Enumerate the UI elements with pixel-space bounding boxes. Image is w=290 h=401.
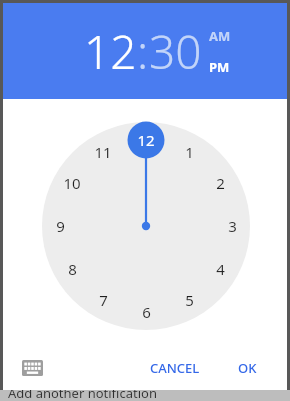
button[interactable]: 30	[149, 20, 202, 83]
staticText: :	[137, 20, 149, 83]
staticText: 30	[149, 20, 202, 83]
staticText: 2	[216, 173, 225, 193]
button[interactable]: 6	[131, 297, 161, 327]
button[interactable]: 11	[88, 137, 118, 167]
button[interactable]: 12	[131, 125, 161, 155]
button[interactable]: 10	[57, 168, 87, 198]
button[interactable]: CANCEL	[142, 352, 208, 384]
staticText: PM	[209, 58, 230, 76]
button[interactable]: 3	[217, 211, 247, 241]
staticText: 9	[56, 216, 65, 236]
button[interactable]: 2	[205, 168, 235, 198]
button[interactable]: AM	[209, 25, 231, 47]
button[interactable]: Switch to keyboard input	[15, 351, 49, 385]
button[interactable]: PM	[209, 56, 230, 78]
button[interactable]: 9	[45, 211, 75, 241]
staticText: 12	[84, 20, 137, 83]
staticText: OK	[238, 359, 257, 377]
button[interactable]: 12	[84, 20, 137, 83]
staticText: Add another notification	[8, 384, 157, 398]
staticText: 12	[137, 130, 155, 150]
button[interactable]: 4	[205, 254, 235, 284]
staticText: AM	[209, 27, 231, 45]
staticText: 5	[185, 290, 194, 310]
staticText: 11	[94, 142, 112, 162]
staticText: 10	[63, 173, 81, 193]
staticText: 8	[68, 259, 77, 279]
staticText: CANCEL	[150, 359, 200, 377]
button[interactable]: 1	[174, 137, 204, 167]
button[interactable]: 5	[174, 285, 204, 315]
staticText: 6	[142, 302, 151, 322]
staticText: 1	[185, 142, 194, 162]
staticText: 4	[216, 259, 225, 279]
staticText: 3	[228, 216, 237, 236]
button[interactable]: OK	[230, 352, 265, 384]
staticText: 7	[99, 290, 108, 310]
button[interactable]: 7	[88, 285, 118, 315]
button[interactable]: 8	[57, 254, 87, 284]
